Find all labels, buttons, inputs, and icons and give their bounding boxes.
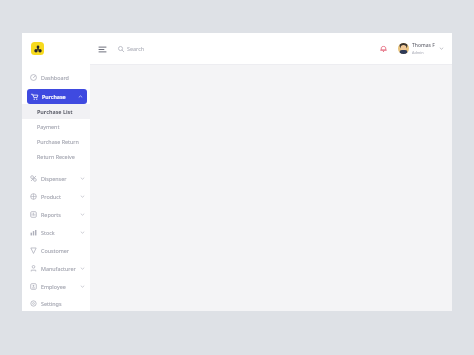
staticText: Purchase List — [37, 108, 73, 115]
staticText: Dispenser — [41, 175, 80, 182]
button[interactable]: Dispenser — [22, 169, 90, 187]
button[interactable]: Toggle menu — [97, 44, 107, 54]
staticText: Payment — [37, 123, 60, 130]
staticText: Dashboard — [41, 74, 85, 81]
button[interactable]: Stock — [22, 223, 90, 241]
staticText: Admin — [412, 50, 424, 55]
staticText: Search — [127, 45, 145, 52]
button[interactable]: Payment — [22, 119, 90, 134]
staticText: Purchase — [42, 93, 78, 100]
staticText: Stock — [41, 229, 80, 236]
staticText: Coustomer — [41, 247, 85, 254]
button[interactable]: Thomas F — [398, 42, 444, 55]
button[interactable]: Notifications — [378, 43, 389, 54]
button[interactable]: Product — [22, 187, 90, 205]
button[interactable]: Purchase List — [22, 104, 90, 119]
button[interactable]: Coustomer — [22, 241, 90, 259]
button[interactable]: Settings — [22, 295, 90, 311]
staticText: Employee — [41, 283, 80, 290]
staticText: Thomas F — [412, 42, 435, 49]
staticText: Purchase Return — [37, 138, 79, 145]
button[interactable]: Employee — [22, 277, 90, 295]
staticText: Settings — [41, 300, 85, 307]
button[interactable]: Return Receive — [22, 149, 90, 164]
staticText: Return Receive — [37, 153, 75, 160]
button[interactable]: Purchase — [27, 89, 87, 104]
button[interactable]: Dashboard — [22, 68, 90, 86]
staticText: Product — [41, 193, 80, 200]
button[interactable]: Search — [118, 42, 145, 55]
button[interactable]: Reports — [22, 205, 90, 223]
staticText: Manufacturer — [41, 265, 80, 272]
button[interactable]: Manufacturer — [22, 259, 90, 277]
button[interactable]: App logo — [31, 42, 44, 55]
staticText: Reports — [41, 211, 80, 218]
button[interactable]: Purchase Return — [22, 134, 90, 149]
